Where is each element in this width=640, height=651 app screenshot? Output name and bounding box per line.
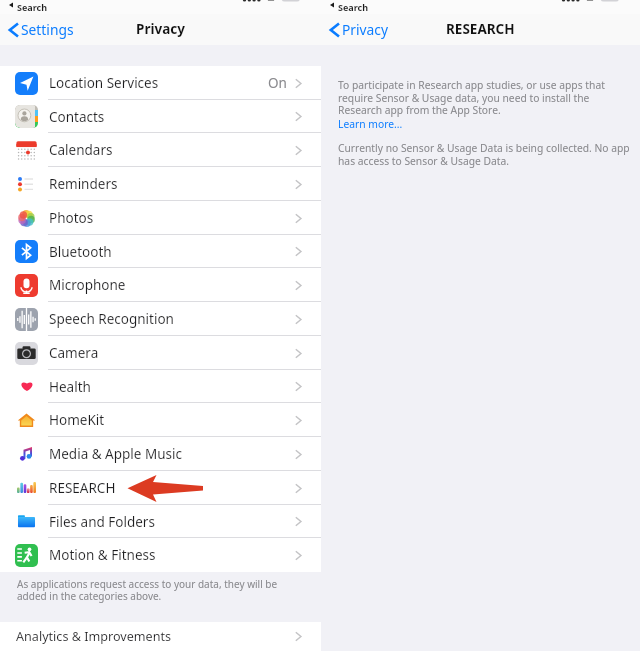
staticText: Photos <box>49 209 94 227</box>
staticText: Camera <box>49 344 99 362</box>
staticText: Search <box>17 1 48 13</box>
staticText: Privacy <box>136 20 185 38</box>
button[interactable]: Learn more... <box>338 117 403 131</box>
staticText: Currently no Sensor & Usage Data is bein… <box>338 141 630 168</box>
button[interactable]: Back to Settings <box>0 14 80 45</box>
staticText: Speech Recognition <box>49 310 174 328</box>
button[interactable]: Location Services <box>0 66 321 100</box>
button[interactable]: Bluetooth <box>0 235 321 268</box>
staticText: On <box>268 74 287 92</box>
button[interactable]: Microphone <box>0 268 321 302</box>
button[interactable]: Contacts <box>0 100 321 133</box>
staticText: Motion & Fitness <box>49 546 156 564</box>
staticText: Calendars <box>49 141 113 159</box>
button[interactable]: Back to Privacy <box>321 14 395 45</box>
staticText: Location Services <box>49 74 159 92</box>
button[interactable]: HomeKit <box>0 403 321 437</box>
button[interactable]: Analytics & Improvements <box>0 622 321 651</box>
staticText: Privacy <box>342 20 389 39</box>
staticText: Settings <box>21 20 74 39</box>
button[interactable]: Files and Folders <box>0 505 321 538</box>
staticText: Files and Folders <box>49 513 155 531</box>
staticText: Search <box>338 1 369 13</box>
button[interactable]: Photos <box>0 201 321 235</box>
staticText: Microphone <box>49 276 126 294</box>
staticText: Analytics & Improvements <box>16 628 172 645</box>
button[interactable]: Motion & Fitness <box>0 538 321 572</box>
staticText: Bluetooth <box>49 243 112 261</box>
staticText: As applications request access to your d… <box>17 577 278 603</box>
staticText: To participate in Research app studies, … <box>338 78 605 117</box>
staticText: RESEARCH <box>49 479 116 497</box>
staticText: Health <box>49 378 91 396</box>
staticText: Reminders <box>49 175 118 193</box>
button[interactable]: Speech Recognition <box>0 302 321 336</box>
button[interactable]: Media & Apple Music <box>0 437 321 471</box>
staticText: Media & Apple Music <box>49 445 182 463</box>
staticText: Contacts <box>49 108 105 126</box>
button[interactable]: Health <box>0 370 321 403</box>
staticText: RESEARCH <box>446 20 515 38</box>
button[interactable]: Calendars <box>0 133 321 167</box>
button[interactable]: Reminders <box>0 167 321 201</box>
button[interactable]: Camera <box>0 336 321 370</box>
button[interactable]: RESEARCH <box>0 471 321 505</box>
staticText: HomeKit <box>49 411 105 429</box>
